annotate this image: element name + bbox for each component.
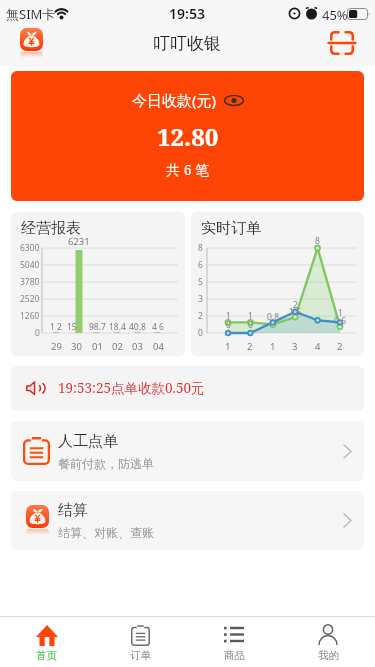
staticText: 1	[270, 340, 276, 352]
staticText: 6231	[68, 235, 90, 247]
staticText: 0	[248, 319, 253, 329]
staticText: 2520	[20, 293, 40, 305]
staticText: 1	[338, 307, 343, 317]
button[interactable]: 订单	[93, 617, 187, 667]
button[interactable]	[20, 28, 43, 59]
staticText: 04	[153, 340, 164, 352]
staticText: 共 6 笔	[166, 160, 210, 179]
staticText: 商品	[224, 649, 245, 662]
button[interactable]	[330, 31, 354, 55]
staticText: 5	[198, 276, 203, 288]
staticText: 餐前付款，防逃单	[58, 456, 154, 471]
staticText: 0	[198, 327, 203, 339]
staticText: 45%	[322, 6, 348, 24]
staticText: 15	[67, 321, 77, 332]
staticText: 12.80	[157, 120, 219, 153]
staticText: 3780	[20, 276, 40, 288]
staticText: 18.4	[109, 321, 126, 332]
staticText: 2	[337, 340, 343, 352]
staticText: 结算	[58, 501, 88, 520]
staticText: 我的	[318, 649, 339, 662]
staticText: 19:53	[169, 4, 205, 23]
staticText: 30	[71, 340, 82, 352]
staticText: 5040	[20, 259, 40, 271]
staticText: 0	[226, 319, 231, 329]
staticText: 实时订单	[201, 219, 261, 238]
staticText: 人工点单	[58, 432, 118, 451]
staticText: 1	[226, 310, 231, 320]
staticText: 结算、对账、查账	[58, 525, 154, 540]
staticText: 2	[247, 340, 253, 352]
button[interactable]: 19:53:25点单收款0.50元	[11, 366, 364, 411]
staticText: 3	[198, 293, 203, 305]
button[interactable]: 今日收款(元)	[11, 71, 364, 201]
staticText: 19:53:25点单收款0.50元	[58, 379, 205, 397]
staticText: 2	[198, 310, 203, 322]
staticText: 订单	[130, 649, 151, 662]
staticText: 4	[315, 340, 321, 352]
button[interactable]: 经营报表	[11, 212, 185, 356]
staticText: 6300	[20, 242, 40, 254]
staticText: 1	[248, 310, 253, 320]
button[interactable]: 商品	[187, 617, 281, 667]
staticText: 4 6	[152, 321, 164, 332]
staticText: 3	[292, 340, 298, 352]
staticText: 98.7	[89, 321, 106, 332]
staticText: 03	[132, 340, 143, 352]
staticText: 40.8	[129, 321, 146, 332]
staticText: 首页	[36, 649, 57, 662]
staticText: 1 2	[50, 321, 62, 332]
button[interactable]: 结算	[11, 491, 364, 550]
staticText: 8	[315, 235, 320, 245]
staticText: 0.8	[267, 311, 280, 321]
staticText: 01	[92, 340, 103, 352]
staticText: 1	[225, 340, 231, 352]
button[interactable]: 人工点单	[11, 421, 364, 481]
staticText: 6	[198, 259, 203, 271]
staticText: 0.6	[334, 315, 347, 325]
staticText: 今日收款(元)	[132, 90, 217, 110]
staticText: 0	[35, 327, 40, 339]
button[interactable]: 我的	[281, 617, 375, 667]
staticText: 29	[51, 340, 62, 352]
staticText: 1.5	[289, 306, 302, 316]
staticText: 8	[198, 242, 203, 254]
staticText: 無SIM卡	[6, 5, 56, 23]
staticText: 叮叮收银	[153, 33, 221, 54]
button[interactable]: 实时订单	[191, 212, 364, 356]
staticText: 1260	[20, 310, 40, 322]
button[interactable]: 首页	[0, 617, 93, 667]
staticText: 02	[112, 340, 123, 352]
staticText: 经营报表	[21, 219, 81, 238]
button[interactable]	[224, 94, 244, 107]
staticText: 2	[293, 299, 298, 309]
